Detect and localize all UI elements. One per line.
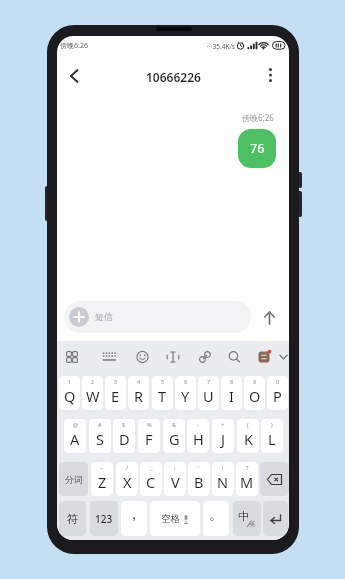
staticText: ⋯35.4K/s	[206, 42, 235, 51]
staticText: X	[123, 472, 132, 492]
staticText: 2	[91, 378, 95, 385]
staticText: ，	[127, 506, 141, 524]
staticText: ~	[100, 464, 104, 471]
staticText: ;	[174, 464, 176, 471]
staticText: L	[268, 429, 276, 449]
staticText: 傍晚6:26	[60, 41, 88, 51]
button[interactable]	[69, 69, 79, 83]
staticText: _	[150, 464, 153, 471]
staticText: T	[158, 386, 167, 406]
staticText: E	[111, 386, 120, 406]
button[interactable]: '	[188, 462, 210, 496]
staticText: 123	[95, 512, 113, 526]
staticText: 空格	[161, 513, 180, 525]
button[interactable]: (	[237, 419, 259, 453]
button[interactable]: 1	[59, 376, 80, 410]
staticText: 5	[161, 378, 165, 385]
staticText: M	[240, 472, 254, 492]
staticText: 9	[253, 378, 257, 385]
staticText: -	[197, 421, 199, 428]
button[interactable]: 8	[221, 376, 242, 410]
button[interactable]: 短信	[64, 301, 251, 333]
staticText: U	[203, 386, 214, 406]
staticText: C	[146, 472, 156, 492]
button[interactable]	[266, 67, 275, 83]
staticText: S	[96, 429, 104, 449]
button[interactable]: /	[116, 462, 138, 496]
button[interactable]: 76	[238, 129, 276, 168]
button[interactable]: @	[64, 419, 86, 453]
button[interactable]: 分词	[59, 462, 88, 496]
button[interactable]: 。	[203, 501, 229, 536]
staticText: 7	[207, 378, 211, 385]
staticText: 中	[238, 509, 249, 523]
staticText: 分词	[65, 474, 83, 485]
staticText: 10666226	[146, 69, 201, 85]
staticText: B	[194, 472, 204, 492]
staticText: $	[122, 421, 126, 428]
button[interactable]	[260, 462, 289, 496]
button[interactable]: 空格	[150, 501, 200, 536]
button[interactable]: 123	[90, 501, 118, 536]
staticText: Z	[98, 472, 107, 492]
staticText: 3	[114, 378, 118, 385]
button[interactable]: ?	[236, 462, 258, 496]
button[interactable]: +	[212, 419, 234, 453]
button[interactable]: _	[140, 462, 162, 496]
staticText: 8	[230, 378, 234, 385]
button[interactable]: 9	[244, 376, 265, 410]
staticText: 1	[68, 378, 72, 385]
staticText: D	[119, 429, 130, 449]
staticText: 短信	[95, 311, 113, 322]
button[interactable]: ;	[164, 462, 186, 496]
button[interactable]: ~	[91, 462, 113, 496]
button[interactable]: ，	[121, 501, 147, 536]
staticText: /	[126, 464, 129, 471]
button[interactable]: 4	[128, 376, 149, 410]
staticText: W	[86, 386, 100, 406]
staticText: Y	[181, 386, 190, 406]
button[interactable]	[263, 310, 276, 326]
staticText: 英	[249, 520, 256, 528]
staticText: Q	[64, 386, 76, 406]
staticText: %	[147, 421, 152, 428]
staticText: 6	[184, 378, 188, 385]
button[interactable]: )	[261, 419, 283, 453]
staticText: G	[169, 429, 180, 449]
staticText: )	[271, 421, 273, 428]
staticText: 符	[67, 512, 79, 526]
staticText: !	[222, 464, 224, 471]
staticText: A	[70, 429, 80, 449]
button[interactable]: 中	[233, 501, 261, 536]
staticText: K	[244, 429, 253, 449]
staticText: 傍晚6:26	[242, 112, 274, 123]
button[interactable]: 3	[105, 376, 126, 410]
staticText: R	[134, 386, 144, 406]
button[interactable]: -	[187, 419, 209, 453]
button[interactable]: 2	[82, 376, 103, 410]
button[interactable]: !	[212, 462, 234, 496]
button[interactable]	[263, 501, 288, 536]
staticText: '	[198, 464, 200, 471]
button[interactable]: 5	[152, 376, 173, 410]
button[interactable]: 符	[59, 501, 86, 536]
staticText: J	[221, 429, 225, 449]
staticText: 4	[137, 378, 141, 385]
button[interactable]: 7	[198, 376, 219, 410]
button[interactable]: 6	[175, 376, 196, 410]
staticText: ?	[246, 464, 249, 471]
staticText: &	[172, 421, 177, 428]
staticText: I	[229, 386, 234, 406]
button[interactable]: $	[113, 419, 135, 453]
staticText: O	[249, 386, 261, 406]
button[interactable]: &	[163, 419, 185, 453]
staticText: N	[217, 472, 229, 492]
button[interactable]: 0	[267, 376, 288, 410]
staticText: 0	[276, 378, 280, 385]
button[interactable]: %	[138, 419, 160, 453]
staticText: +	[221, 421, 225, 428]
staticText: P	[273, 386, 282, 406]
staticText: F	[145, 429, 153, 449]
staticText: @	[73, 421, 78, 428]
button[interactable]: #	[89, 419, 111, 453]
